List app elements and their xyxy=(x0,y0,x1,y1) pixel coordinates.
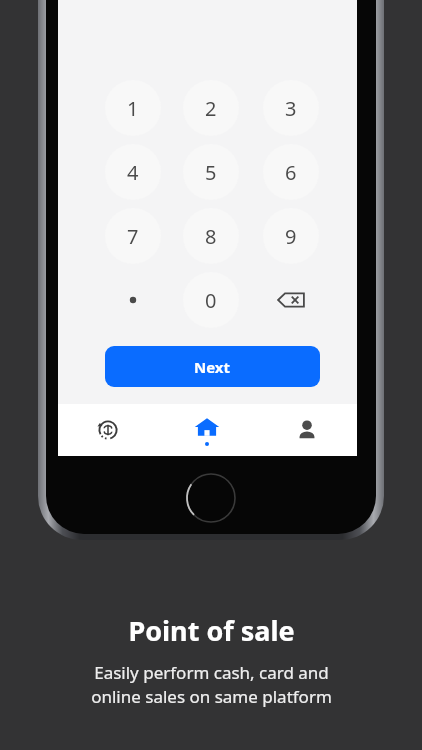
staticText: 9 xyxy=(285,223,297,250)
staticText: Easily perform cash, card and online sal… xyxy=(91,661,332,708)
staticText: 4 xyxy=(127,159,139,186)
button[interactable]: Backspace xyxy=(263,272,319,328)
button[interactable]: 9 xyxy=(263,208,319,264)
staticText: 6 xyxy=(285,159,297,186)
staticText: Next xyxy=(194,357,231,377)
button[interactable]: Profile xyxy=(257,404,357,456)
button[interactable]: Home xyxy=(157,404,257,456)
button[interactable]: 3 xyxy=(263,80,319,136)
button[interactable]: 6 xyxy=(263,144,319,200)
button[interactable]: 4 xyxy=(105,144,161,200)
button[interactable]: 2 xyxy=(183,80,239,136)
button[interactable]: 0 xyxy=(183,272,239,328)
staticText: 7 xyxy=(127,223,139,250)
button[interactable]: Next xyxy=(105,346,320,387)
button[interactable]: 5 xyxy=(183,144,239,200)
button[interactable]: Decimal point xyxy=(105,272,161,328)
button[interactable]: 7 xyxy=(105,208,161,264)
staticText: 5 xyxy=(205,159,217,186)
staticText: 0 xyxy=(205,287,217,314)
staticText: 1 xyxy=(127,95,139,122)
button[interactable]: 8 xyxy=(183,208,239,264)
button[interactable]: 1 xyxy=(105,80,161,136)
button[interactable]: Transactions xyxy=(58,404,157,456)
staticText: 3 xyxy=(285,95,297,122)
staticText: 8 xyxy=(205,223,217,250)
staticText: Point of sale xyxy=(128,612,295,649)
staticText: 2 xyxy=(205,95,217,122)
